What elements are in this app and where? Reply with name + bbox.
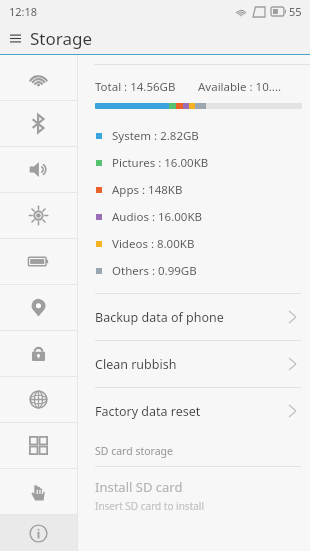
staticText: SD card storage: [95, 444, 173, 458]
button[interactable]: Wi-Fi: [0, 55, 77, 100]
staticText: Audios : 16.00KB: [112, 209, 203, 225]
button[interactable]: Security: [0, 331, 77, 376]
staticText: Clean rubbish: [95, 356, 289, 373]
button[interactable]: Clean rubbish: [78, 341, 310, 387]
button[interactable]: Battery: [0, 239, 77, 284]
staticText: Factory data reset: [95, 403, 289, 420]
staticText: Apps : 148KB: [112, 182, 183, 198]
staticText: 55: [289, 4, 302, 19]
button[interactable]: Bluetooth: [0, 101, 77, 146]
staticText: Storage: [30, 27, 93, 50]
button[interactable]: Gestures: [0, 469, 77, 514]
staticText: Others : 0.99GB: [112, 263, 197, 279]
button[interactable]: Storage information: [0, 515, 77, 551]
staticText: Backup data of phone: [95, 309, 289, 326]
button[interactable]: Open navigation menu: [0, 23, 30, 53]
button[interactable]: Sound: [0, 147, 77, 192]
button[interactable]: Backup data of phone: [78, 294, 310, 340]
button[interactable]: Install SD card: [78, 478, 310, 513]
button[interactable]: Factory data reset: [78, 388, 310, 434]
button[interactable]: Apps: [0, 423, 77, 468]
button[interactable]: Language and input: [0, 377, 77, 422]
staticText: Install SD card: [95, 478, 183, 496]
staticText: Videos : 8.00KB: [112, 236, 195, 252]
button[interactable]: Location: [0, 285, 77, 330]
staticText: Insert SD card to install: [95, 499, 205, 513]
staticText: 12:18: [9, 4, 38, 19]
button[interactable]: Display brightness: [0, 193, 77, 238]
staticText: Available : 10....: [198, 79, 282, 95]
staticText: Pictures : 16.00KB: [112, 155, 209, 171]
staticText: System : 2.82GB: [112, 128, 199, 144]
staticText: Total : 14.56GB: [95, 79, 176, 95]
